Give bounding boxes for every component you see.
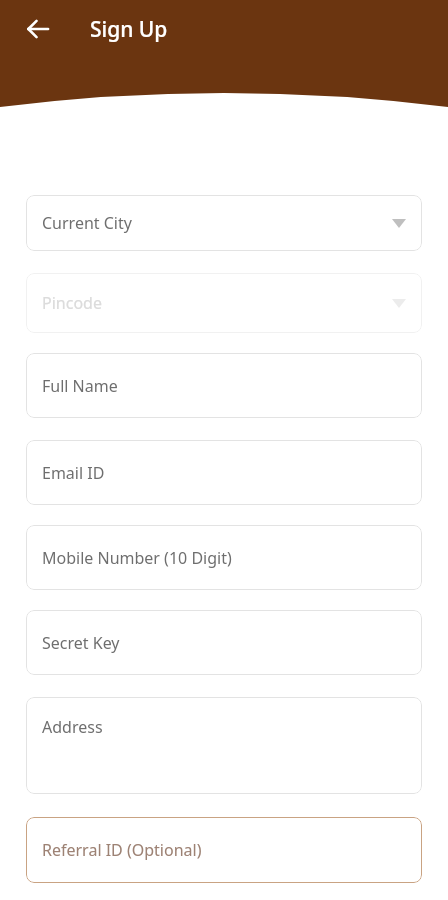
staticText: Sign Up [90,15,168,44]
staticText: Email ID [42,462,105,484]
staticText: Secret Key [42,632,120,654]
staticText: Current City [42,212,132,234]
button[interactable]: Secret Key [26,610,422,675]
staticText: Referral ID (Optional) [42,839,202,861]
staticText: Address [42,716,103,738]
staticText: Mobile Number (10 Digit) [42,547,232,569]
button[interactable]: Full Name [26,353,422,418]
button[interactable]: Current City [26,195,422,251]
button[interactable]: Pincode [26,273,422,333]
staticText: Pincode [42,292,102,314]
button[interactable]: Mobile Number (10 Digit) [26,525,422,590]
button[interactable]: Email ID [26,440,422,505]
staticText: Full Name [42,375,118,397]
button[interactable]: Back [20,11,56,47]
button[interactable]: Address [26,697,422,794]
button[interactable]: Referral ID (Optional) [26,817,422,883]
